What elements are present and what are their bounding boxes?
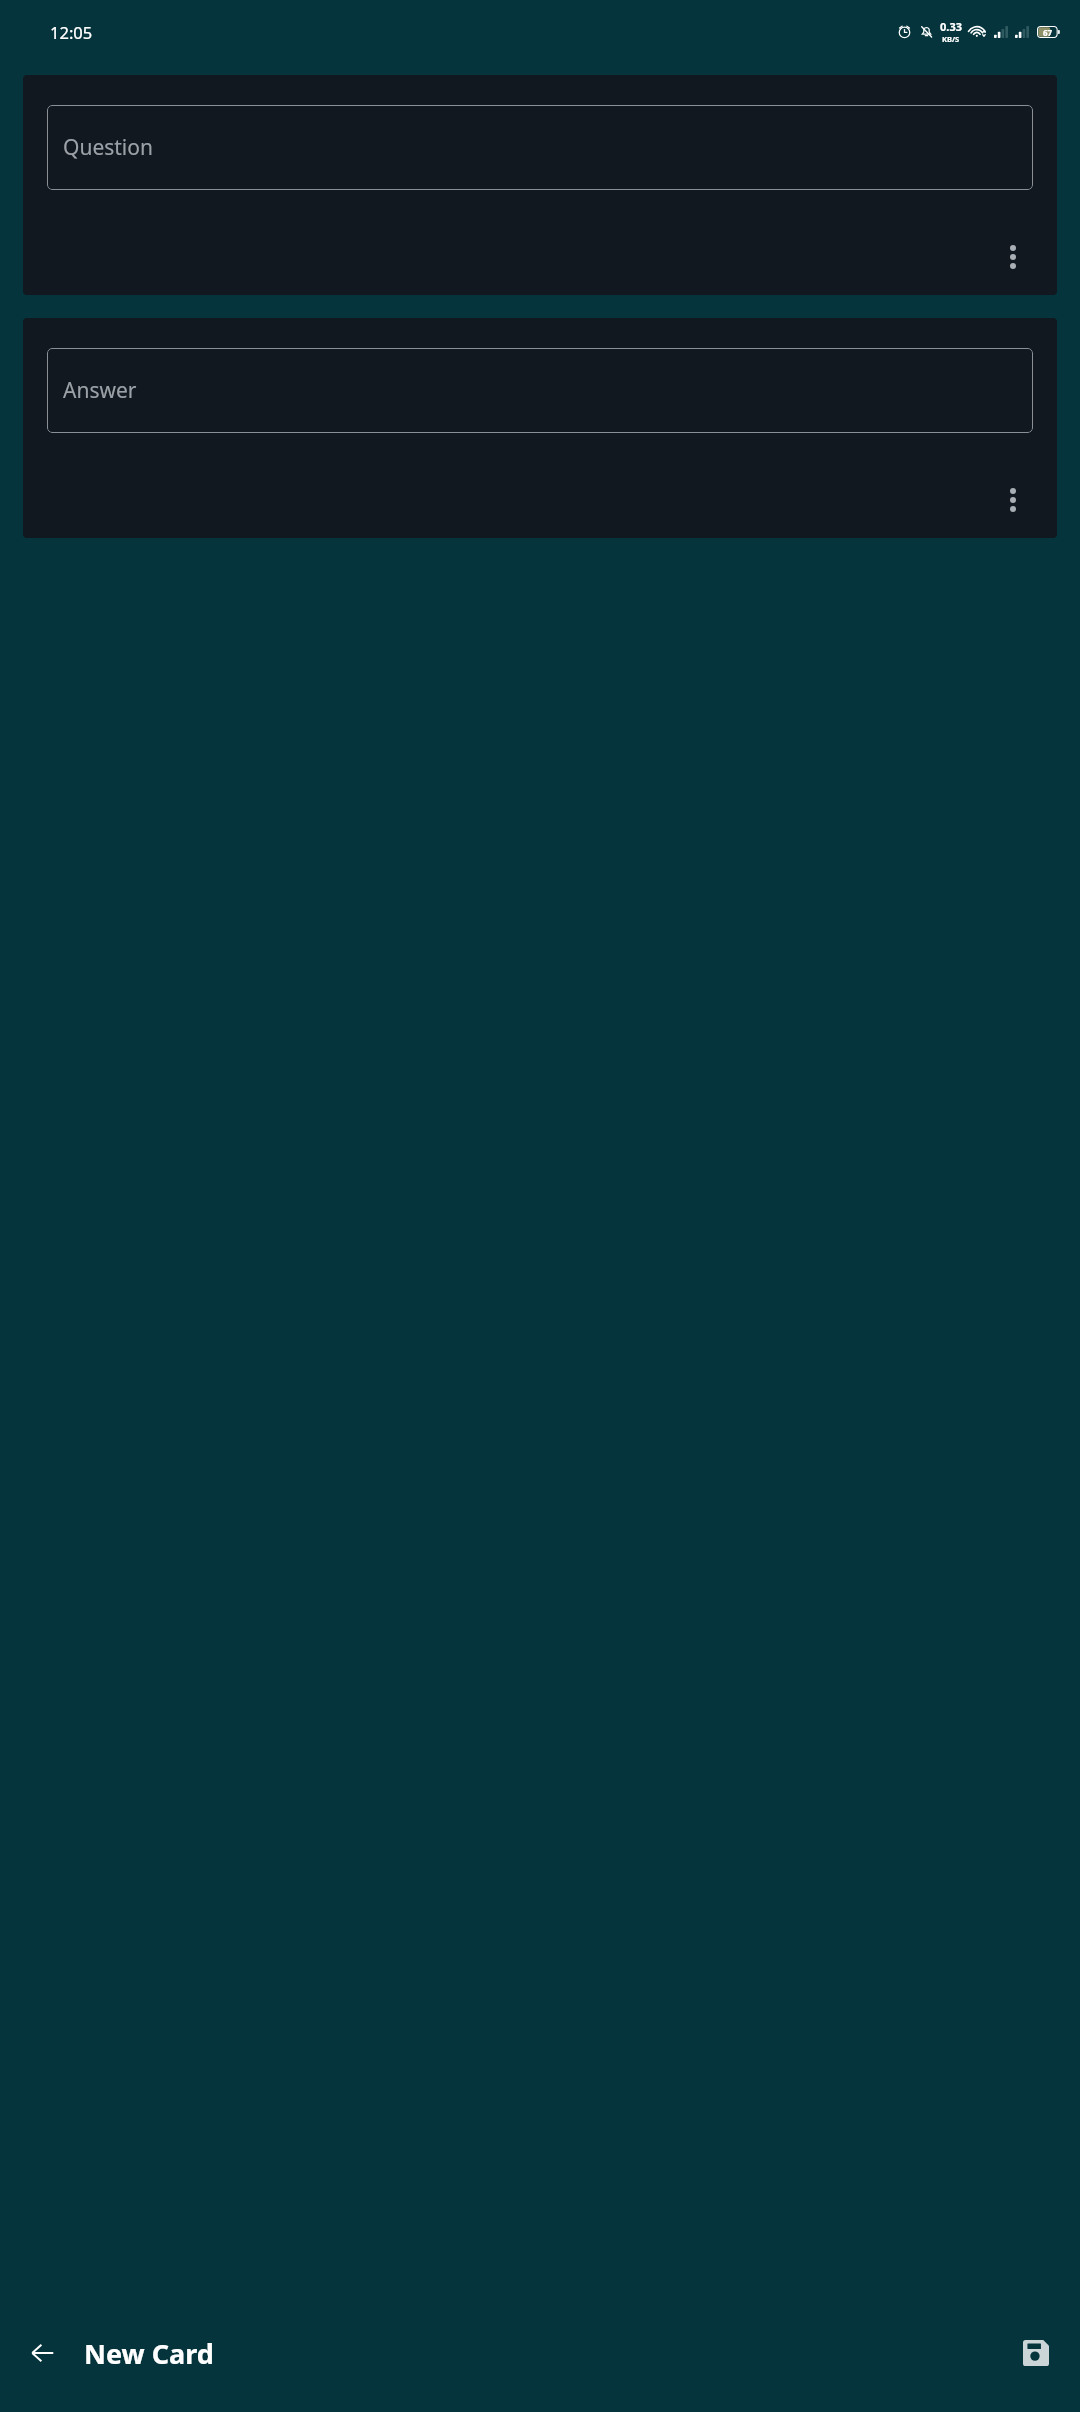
- button[interactable]: More options for Answer: [991, 478, 1035, 522]
- staticText: 67: [1043, 27, 1053, 38]
- button[interactable]: Question: [47, 105, 1033, 190]
- button[interactable]: New Card: [84, 2335, 214, 2372]
- button[interactable]: Save: [1008, 2325, 1064, 2381]
- staticText: 0.33: [940, 19, 962, 34]
- staticText: KB/S: [942, 34, 960, 44]
- button[interactable]: Answer: [23, 318, 1057, 538]
- staticText: Question: [63, 133, 153, 162]
- button[interactable]: Back: [14, 2325, 70, 2381]
- staticText: 12:05: [50, 21, 93, 43]
- button[interactable]: Question: [23, 75, 1057, 295]
- button[interactable]: Answer: [47, 348, 1033, 433]
- button[interactable]: More options for Question: [991, 235, 1035, 279]
- staticText: Answer: [63, 376, 137, 405]
